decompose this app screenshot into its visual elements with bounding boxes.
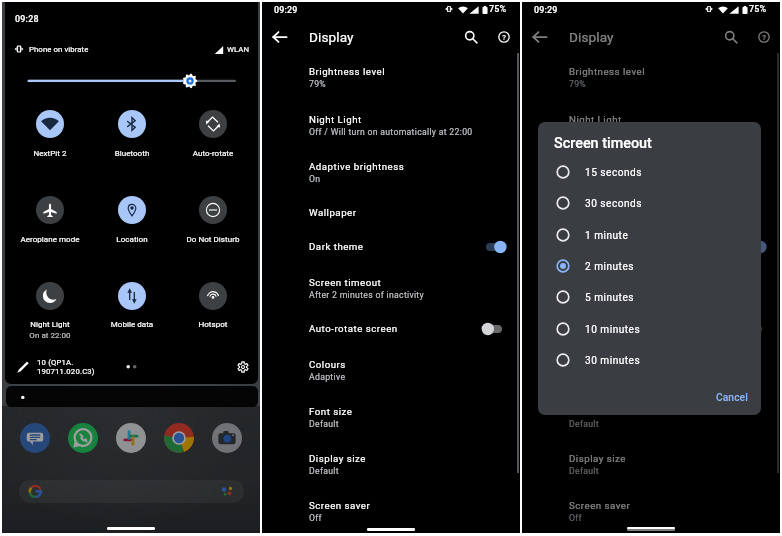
button[interactable]: Edit quick settings: [14, 358, 32, 376]
button[interactable]: Settings: [233, 357, 253, 377]
button[interactable]: Chrome: [164, 423, 194, 453]
button[interactable]: 15 seconds: [538, 157, 761, 188]
button[interactable]: 5 minutes: [538, 282, 761, 313]
button[interactable]: Screen timeout: [522, 265, 780, 312]
staticText: 10 (QP1A.: [37, 358, 74, 367]
staticText: Font size: [309, 406, 353, 417]
staticText: NextPit 2: [0, 149, 110, 158]
button[interactable]: Help: [491, 24, 517, 50]
button[interactable]: Messages: [20, 423, 50, 453]
staticText: Hotspot: [153, 320, 273, 329]
button[interactable]: [94, 279, 170, 327]
staticText: Screen saver: [569, 500, 631, 511]
staticText: After 2 minutes of inactivity: [569, 290, 684, 300]
button[interactable]: Adaptive brightness: [262, 149, 520, 196]
button[interactable]: Help: [751, 24, 777, 50]
button[interactable]: 2 minutes: [538, 251, 761, 282]
button[interactable]: Night Light: [262, 102, 520, 149]
staticText: Auto-rotate screen: [309, 323, 398, 334]
staticText: Night Light: [0, 320, 110, 329]
staticText: 09:29: [534, 5, 558, 15]
staticText: 75%: [749, 4, 767, 15]
button[interactable]: 10 minutes: [538, 314, 761, 345]
staticText: 5 minutes: [585, 292, 634, 304]
staticText: Adaptive brightness: [569, 161, 665, 172]
staticText: Mobile data: [72, 320, 192, 329]
staticText: Bluetooth: [72, 149, 192, 158]
button[interactable]: Search: [458, 24, 484, 50]
button[interactable]: Display size: [262, 441, 520, 488]
button[interactable]: Font size: [522, 394, 780, 441]
staticText: 09:29: [274, 5, 298, 15]
staticText: 30 minutes: [585, 355, 641, 367]
button[interactable]: Font size: [262, 394, 520, 441]
staticText: 30 seconds: [585, 198, 642, 210]
button[interactable]: Display size: [522, 441, 780, 488]
staticText: 09:28: [15, 14, 39, 24]
staticText: 79%: [309, 79, 327, 89]
staticText: Display size: [309, 453, 366, 464]
button[interactable]: [12, 107, 88, 155]
button[interactable]: WhatsApp: [68, 423, 98, 453]
button[interactable]: Search: [718, 24, 744, 50]
staticText: Colours: [309, 359, 346, 370]
button[interactable]: Auto-rotate screen: [262, 312, 520, 347]
staticText: Location: [72, 235, 192, 244]
button[interactable]: Camera: [212, 423, 242, 453]
button[interactable]: Adaptive brightness: [522, 149, 780, 196]
staticText: Night Light: [569, 114, 622, 125]
staticText: On at 22:00: [0, 331, 110, 340]
button[interactable]: Screen timeout: [262, 265, 520, 312]
button[interactable]: Search: [19, 480, 244, 503]
button[interactable]: Screen saver: [522, 488, 780, 535]
button[interactable]: [175, 279, 251, 327]
button[interactable]: Back: [527, 24, 553, 50]
staticText: Font size: [569, 406, 613, 417]
staticText: Off / Will turn on automatically at 22:0…: [309, 127, 473, 137]
button[interactable]: Slack: [116, 423, 146, 453]
button[interactable]: [12, 279, 88, 327]
staticText: Screen timeout: [554, 135, 652, 152]
staticText: Default: [309, 419, 339, 429]
button[interactable]: Colours: [522, 347, 780, 394]
staticText: 75%: [489, 4, 507, 15]
button[interactable]: [175, 107, 251, 155]
button[interactable]: Wallpaper: [262, 196, 520, 231]
button[interactable]: Dark theme: [522, 230, 780, 265]
button[interactable]: 1 minute: [538, 220, 761, 251]
button[interactable]: [12, 193, 88, 241]
staticText: Default: [569, 419, 599, 429]
button[interactable]: Wallpaper: [522, 196, 780, 231]
button[interactable]: 30 minutes: [538, 345, 761, 376]
staticText: 10 minutes: [585, 324, 641, 336]
button[interactable]: Cancel: [714, 387, 750, 407]
staticText: Auto-rotate screen: [569, 323, 658, 334]
button[interactable]: Brightness level: [522, 54, 780, 101]
button[interactable]: [6, 386, 258, 407]
staticText: Screen timeout: [309, 277, 382, 288]
staticText: Brightness level: [569, 66, 646, 77]
staticText: On: [309, 174, 321, 184]
staticText: 15 seconds: [585, 167, 642, 179]
button[interactable]: [94, 193, 170, 241]
staticText: Phone on vibrate: [29, 45, 89, 54]
staticText: WLAN: [227, 45, 250, 54]
staticText: ?: [704, 33, 782, 42]
button[interactable]: Colours: [262, 347, 520, 394]
button[interactable]: Back: [267, 24, 293, 50]
staticText: Display: [569, 29, 614, 45]
button[interactable]: Screen saver: [262, 488, 520, 535]
staticText: 1 minute: [585, 230, 629, 242]
staticText: Off: [569, 513, 582, 523]
button[interactable]: 30 seconds: [538, 188, 761, 219]
button[interactable]: Night Light: [522, 102, 780, 149]
button[interactable]: Auto-rotate screen: [522, 312, 780, 347]
button[interactable]: Brightness level: [262, 54, 520, 101]
button[interactable]: [94, 107, 170, 155]
button[interactable]: Dark theme: [262, 230, 520, 265]
staticText: 79%: [569, 79, 587, 89]
button[interactable]: [175, 193, 251, 241]
staticText: Colours: [569, 359, 606, 370]
